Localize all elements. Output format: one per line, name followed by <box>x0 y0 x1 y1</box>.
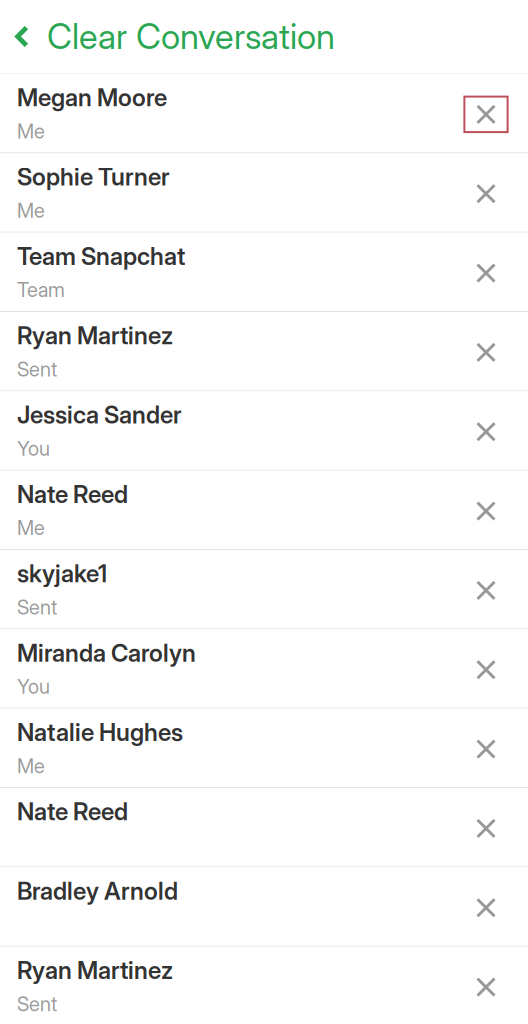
button[interactable]: skyjake1 <box>0 550 528 628</box>
button[interactable]: Clear conversation with Team Snapchat <box>464 233 508 311</box>
button[interactable]: Bradley Arnold <box>0 867 528 946</box>
staticText: Sent <box>17 357 57 381</box>
button[interactable]: Clear conversation with Bradley Arnold <box>464 867 508 946</box>
button[interactable]: Jessica Sander <box>0 391 528 470</box>
staticText: Nate Reed <box>17 480 128 509</box>
staticText: skyjake1 <box>17 559 107 588</box>
staticText: Nate Reed <box>17 797 128 826</box>
button[interactable]: Clear conversation with Natalie Hughes <box>464 709 508 787</box>
button[interactable]: Clear conversation with Nate Reed <box>464 471 508 549</box>
staticText: Jessica Sander <box>17 400 182 429</box>
button[interactable]: Clear conversation with Sophie Turner <box>464 153 508 232</box>
staticText: Natalie Hughes <box>17 718 183 747</box>
button[interactable]: Miranda Carolyn <box>0 629 528 708</box>
staticText: Ryan Martinez <box>17 321 173 350</box>
button[interactable]: Team Snapchat <box>0 233 528 311</box>
button[interactable]: Clear conversation with Jessica Sander <box>464 391 508 470</box>
staticText: Clear Conversation <box>47 15 335 57</box>
button[interactable]: Clear conversation with Ryan Martinez <box>464 312 508 390</box>
button[interactable]: Clear Conversation <box>0 0 351 73</box>
staticText: Sent <box>17 992 57 1016</box>
staticText: Team <box>17 278 65 302</box>
staticText: Me <box>17 754 45 778</box>
staticText: Sent <box>17 595 57 619</box>
button[interactable]: Clear conversation with Megan Moore <box>464 74 508 152</box>
button[interactable]: Clear conversation with Nate Reed <box>464 788 508 866</box>
button[interactable]: Clear conversation with Ryan Martinez <box>464 947 508 1024</box>
staticText: Me <box>17 198 45 223</box>
staticText: Miranda Carolyn <box>17 638 196 667</box>
button[interactable]: Natalie Hughes <box>0 709 528 787</box>
button[interactable]: Nate Reed <box>0 788 528 866</box>
staticText: Sophie Turner <box>17 162 170 191</box>
button[interactable]: Sophie Turner <box>0 153 528 232</box>
button[interactable]: Ryan Martinez <box>0 947 528 1024</box>
staticText: Bradley Arnold <box>17 876 178 905</box>
button[interactable]: Clear conversation with skyjake1 <box>464 550 508 628</box>
button[interactable]: Megan Moore <box>0 74 528 152</box>
button[interactable]: Clear conversation with Miranda Carolyn <box>464 629 508 708</box>
staticText: You <box>17 674 50 699</box>
staticText: Ryan Martinez <box>17 956 173 985</box>
staticText: Me <box>17 119 45 143</box>
staticText: You <box>17 436 50 461</box>
staticText: Me <box>17 516 45 540</box>
button[interactable]: Nate Reed <box>0 471 528 549</box>
staticText: Megan Moore <box>17 83 167 112</box>
button[interactable]: Ryan Martinez <box>0 312 528 390</box>
staticText: Team Snapchat <box>17 242 185 271</box>
